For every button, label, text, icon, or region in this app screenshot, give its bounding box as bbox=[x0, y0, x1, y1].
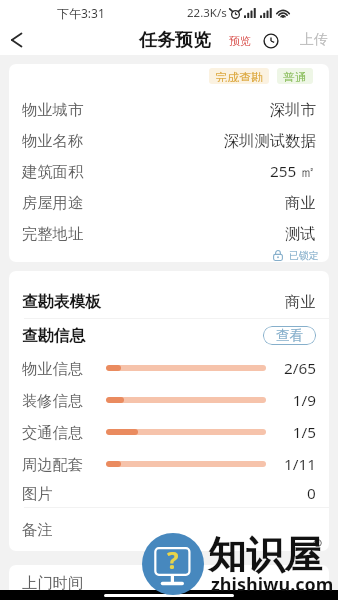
button[interactable]: 建筑面积 bbox=[9, 156, 329, 187]
staticText: 物业信息 bbox=[22, 359, 106, 378]
button[interactable]: 查勘表模板 bbox=[9, 285, 329, 318]
staticText: 上门时间 bbox=[22, 573, 84, 592]
button[interactable]: 物业名称 bbox=[9, 125, 329, 156]
button[interactable]: 完整地址 bbox=[9, 218, 329, 249]
staticText: ? bbox=[167, 543, 179, 576]
staticText: 知识屋 bbox=[208, 531, 322, 579]
staticText: 1/5 bbox=[292, 422, 316, 443]
button[interactable]: 周边配套 bbox=[9, 448, 329, 480]
staticText: 装修信息 bbox=[22, 391, 106, 410]
button[interactable]: Back bbox=[0, 25, 32, 55]
staticText: 查看 bbox=[276, 327, 303, 344]
staticText: 查勘信息 bbox=[22, 326, 86, 346]
button[interactable]: 图片 bbox=[9, 480, 329, 507]
button[interactable]: 备注 bbox=[9, 508, 329, 551]
staticText: 下午3:31 bbox=[57, 5, 105, 21]
button[interactable]: 查看 bbox=[263, 326, 316, 345]
staticText: 图片 bbox=[22, 484, 53, 503]
staticText: 已锁定 bbox=[289, 250, 319, 262]
staticText: 商业 bbox=[285, 193, 316, 212]
staticText: 2/65 bbox=[284, 358, 316, 379]
button[interactable]: 预览 bbox=[229, 33, 279, 49]
staticText: 0 bbox=[307, 483, 316, 504]
staticText: 完成查勘 bbox=[215, 70, 263, 82]
staticText: 完整地址 bbox=[22, 224, 84, 243]
staticText: 1/11 bbox=[284, 454, 316, 475]
staticText: 22.3K/s bbox=[187, 5, 227, 21]
staticText: 查勘表模板 bbox=[22, 292, 101, 312]
staticText: 周边配套 bbox=[22, 455, 106, 474]
staticText: 任务预览 bbox=[139, 29, 211, 52]
staticText: 商业 bbox=[285, 292, 316, 311]
staticText: 1/9 bbox=[292, 390, 316, 411]
button[interactable]: 上门时间 bbox=[9, 565, 329, 599]
staticText: 测试 bbox=[285, 224, 316, 243]
staticText: 普通 bbox=[283, 70, 307, 82]
staticText: 房屋用途 bbox=[22, 193, 84, 212]
staticText: 深圳测试数据 bbox=[224, 131, 316, 150]
button[interactable]: 上传 bbox=[300, 31, 328, 49]
staticText: 交通信息 bbox=[22, 423, 106, 442]
button[interactable]: 装修信息 bbox=[9, 384, 329, 416]
staticText: 物业名称 bbox=[22, 131, 84, 150]
staticText: 255 ㎡ bbox=[270, 161, 316, 182]
staticText: 备注 bbox=[22, 520, 53, 539]
staticText: ® bbox=[313, 535, 323, 550]
staticText: 物业城市 bbox=[22, 100, 84, 119]
button[interactable]: 物业信息 bbox=[9, 352, 329, 384]
staticText: 预览 bbox=[229, 34, 251, 48]
button[interactable]: 交通信息 bbox=[9, 416, 329, 448]
button[interactable]: 物业城市 bbox=[9, 94, 329, 125]
staticText: 建筑面积 bbox=[22, 162, 84, 181]
staticText: zhishiwu.com bbox=[211, 572, 334, 597]
button[interactable]: 房屋用途 bbox=[9, 187, 329, 218]
staticText: 深圳市 bbox=[270, 100, 316, 119]
